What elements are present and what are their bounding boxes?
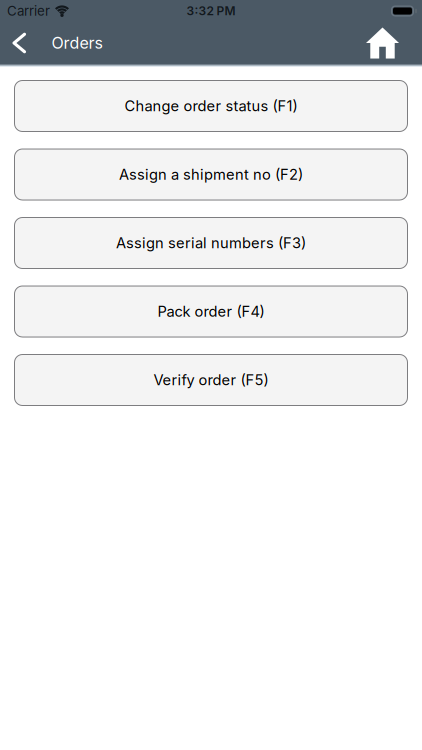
staticText: Pack order (F4) [157,303,264,320]
staticText: 3:32 PM [186,4,235,18]
button[interactable]: Pack order (F4) [14,285,408,337]
staticText: Assign a shipment no (F2) [119,166,303,183]
staticText: Verify order (F5) [153,371,268,389]
button[interactable]: Back [0,22,31,64]
button[interactable]: Assign serial numbers (F3) [14,217,408,269]
staticText: Assign serial numbers (F3) [116,234,306,252]
button[interactable]: Home [366,22,422,64]
button[interactable]: Verify order (F5) [14,354,408,406]
button[interactable]: Assign a shipment no (F2) [14,148,408,200]
button[interactable]: Change order status (F1) [14,80,408,132]
staticText: Orders [51,34,102,52]
staticText: Carrier [7,3,50,19]
staticText: Change order status (F1) [124,97,297,115]
